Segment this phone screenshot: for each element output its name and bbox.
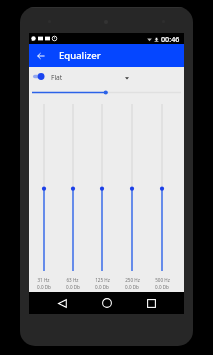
staticText: 0.0 Db — [37, 284, 51, 290]
staticText: 0.0 Db — [125, 284, 139, 290]
button[interactable]: Recent apps — [140, 292, 162, 314]
button[interactable]: Back — [51, 292, 73, 314]
button[interactable]: Back — [33, 48, 48, 63]
staticText: Equalizer — [59, 49, 101, 62]
staticText: Flat — [51, 73, 63, 82]
staticText: 500 Hz — [155, 277, 170, 283]
button[interactable]: 31 Hz — [36, 104, 52, 271]
staticText: 0.0 Db — [95, 284, 109, 290]
button[interactable]: Home — [96, 292, 118, 314]
staticText: 0.0 Db — [155, 284, 169, 290]
button[interactable]: Choose preset — [121, 72, 132, 83]
staticText: 63 Hz — [66, 277, 79, 283]
staticText: 250 Hz — [125, 277, 140, 283]
button[interactable]: 63 Hz — [65, 104, 81, 271]
staticText: 125 Hz — [95, 277, 110, 283]
staticText: 00:46 — [161, 34, 180, 44]
button[interactable]: Level — [32, 88, 181, 97]
staticText: 31 Hz — [37, 277, 50, 283]
button[interactable]: 500 Hz — [154, 104, 170, 271]
button[interactable]: 250 Hz — [124, 104, 140, 271]
staticText: 0.0 Db — [66, 284, 80, 290]
button[interactable]: Enable equalizer — [32, 71, 45, 82]
button[interactable]: 125 Hz — [94, 104, 110, 271]
